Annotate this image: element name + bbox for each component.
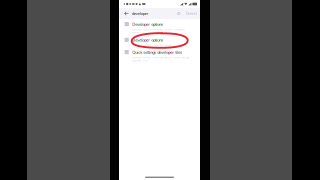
button[interactable]: Developer options	[119, 19, 200, 34]
staticText: Developer options	[132, 21, 163, 27]
staticText: Cancel	[186, 11, 197, 16]
staticText: developer	[132, 11, 149, 16]
button[interactable]: Developer options	[119, 34, 200, 46]
staticText: Settings > System > Developer options	[132, 43, 171, 47]
button[interactable]: developer	[119, 8, 200, 19]
staticText: Developer options	[132, 37, 163, 43]
staticText: Settings > System > Developer options > …	[132, 56, 189, 62]
button[interactable]: Quick settings developer tiles	[119, 46, 200, 62]
staticText: Settings > System > Developer options > …	[132, 28, 184, 34]
staticText: Quick settings developer tiles	[132, 49, 182, 55]
